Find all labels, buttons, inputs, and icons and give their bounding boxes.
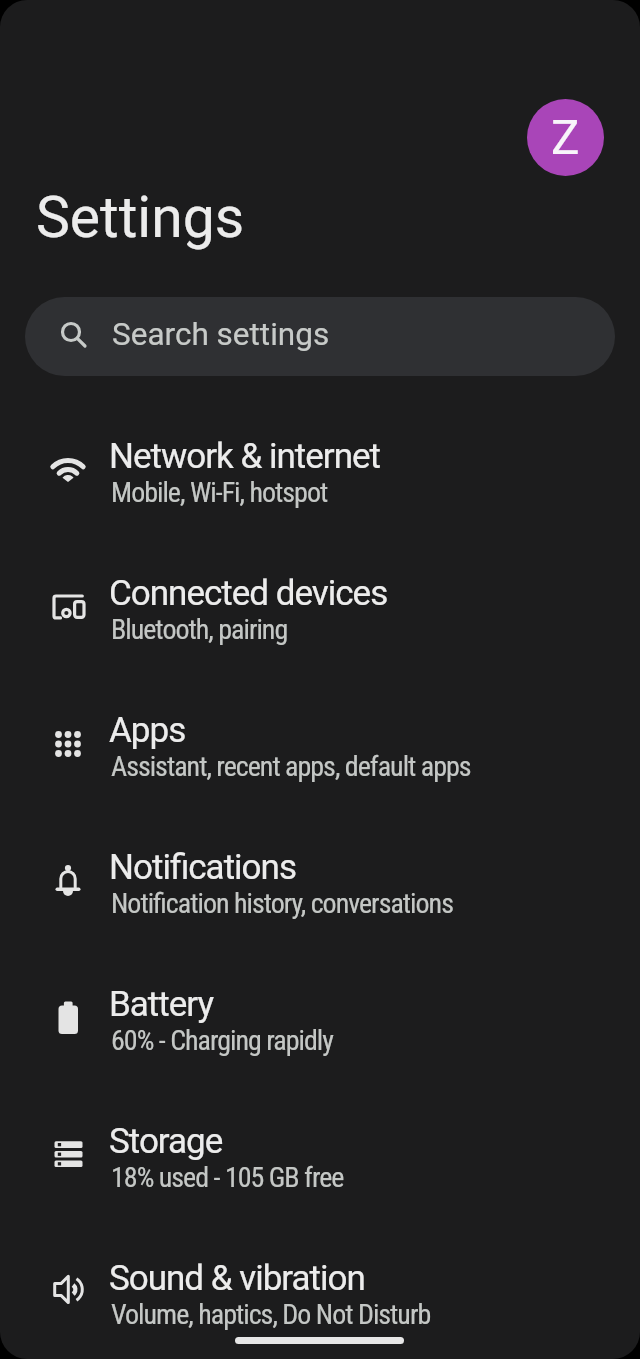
- staticText: Assistant, recent apps, default apps: [111, 750, 471, 783]
- staticText: Settings: [36, 184, 245, 251]
- staticText: Connected devices: [109, 573, 388, 614]
- staticText: Z: [551, 110, 580, 166]
- button[interactable]: Search settings: [25, 297, 615, 376]
- button[interactable]: Apps: [0, 688, 640, 825]
- staticText: Apps: [109, 710, 186, 751]
- button[interactable]: Storage: [0, 1099, 640, 1236]
- staticText: Notifications: [109, 847, 296, 888]
- button[interactable]: Notifications: [0, 825, 640, 962]
- staticText: Bluetooth, pairing: [111, 613, 288, 646]
- button[interactable]: Z: [527, 99, 604, 176]
- staticText: Network & internet: [109, 436, 381, 477]
- button[interactable]: Battery: [0, 962, 640, 1099]
- staticText: Volume, haptics, Do Not Disturb: [111, 1298, 431, 1331]
- button[interactable]: Sound & vibration: [0, 1236, 640, 1359]
- button[interactable]: Network & internet: [0, 414, 640, 551]
- staticText: Mobile, Wi-Fi, hotspot: [111, 476, 328, 509]
- staticText: 18% used - 105 GB free: [111, 1161, 344, 1194]
- staticText: 60% - Charging rapidly: [111, 1024, 333, 1057]
- staticText: Sound & vibration: [109, 1258, 365, 1299]
- staticText: Search settings: [112, 316, 330, 353]
- button[interactable]: Connected devices: [0, 551, 640, 688]
- staticText: Notification history, conversations: [111, 887, 453, 920]
- staticText: Storage: [109, 1121, 223, 1162]
- staticText: Battery: [109, 984, 214, 1025]
